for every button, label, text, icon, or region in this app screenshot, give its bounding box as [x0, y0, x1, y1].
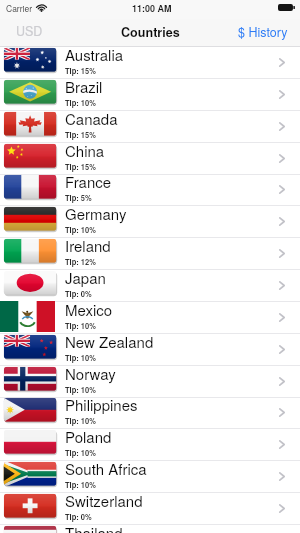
staticText: Tip: 12%	[65, 257, 96, 267]
staticText: $ History	[238, 23, 288, 41]
staticText: Norway	[65, 363, 116, 384]
staticText: Australia	[65, 44, 124, 65]
staticText: Tip: 10%	[65, 321, 96, 331]
button[interactable]: Japan	[0, 270, 300, 301]
staticText: Canada	[65, 108, 118, 129]
staticText: Philippines	[65, 394, 138, 415]
staticText: Ireland	[65, 235, 111, 256]
staticText: Countries	[121, 23, 180, 41]
button[interactable]: Philippines	[0, 397, 300, 428]
staticText: Tip: 10%	[65, 416, 96, 426]
staticText: China	[65, 140, 105, 161]
staticText: France	[65, 171, 112, 192]
staticText: Tip: 15%	[65, 162, 96, 172]
staticText: Carrier	[6, 2, 32, 14]
staticText: Tip: 10%	[65, 480, 96, 490]
staticText: Tip: 10%	[65, 448, 96, 458]
button[interactable]: China	[0, 143, 300, 174]
staticText: Tip: 5%	[65, 193, 92, 203]
staticText: Brazil	[65, 76, 103, 97]
staticText: Thailand	[65, 522, 123, 533]
staticText: Tip: 10%	[65, 225, 96, 235]
button[interactable]: $ History	[226, 19, 300, 47]
button[interactable]: Mexico	[0, 302, 300, 333]
staticText: Poland	[65, 426, 112, 447]
button[interactable]: South Africa	[0, 461, 300, 492]
button[interactable]: Switzerland	[0, 493, 300, 524]
button[interactable]: Thailand	[0, 525, 300, 533]
staticText: Tip: 10%	[65, 385, 96, 395]
staticText: Tip: 15%	[65, 66, 96, 76]
staticText: New Zealand	[65, 331, 154, 352]
staticText: Tip: 15%	[65, 130, 96, 140]
button[interactable]: Canada	[0, 111, 300, 142]
staticText: Tip: 10%	[65, 98, 96, 108]
staticText: Tip: 10%	[65, 353, 96, 363]
staticText: Mexico	[65, 299, 113, 320]
button[interactable]: USD	[0, 19, 59, 47]
button[interactable]: Germany	[0, 206, 300, 237]
staticText: 11:00 AM	[132, 2, 172, 15]
button[interactable]: France	[0, 174, 300, 205]
staticText: USD	[16, 22, 43, 40]
staticText: Tip: 0%	[65, 512, 92, 522]
button[interactable]: Norway	[0, 366, 300, 397]
staticText: Tip: 0%	[65, 289, 92, 299]
button[interactable]: Brazil	[0, 79, 300, 110]
button[interactable]: Australia	[0, 47, 300, 78]
staticText: South Africa	[65, 458, 147, 479]
button[interactable]: New Zealand	[0, 334, 300, 365]
button[interactable]: Ireland	[0, 238, 300, 269]
button[interactable]: Poland	[0, 429, 300, 460]
staticText: Switzerland	[65, 490, 143, 511]
staticText: Japan	[65, 267, 106, 288]
staticText: Germany	[65, 203, 127, 224]
